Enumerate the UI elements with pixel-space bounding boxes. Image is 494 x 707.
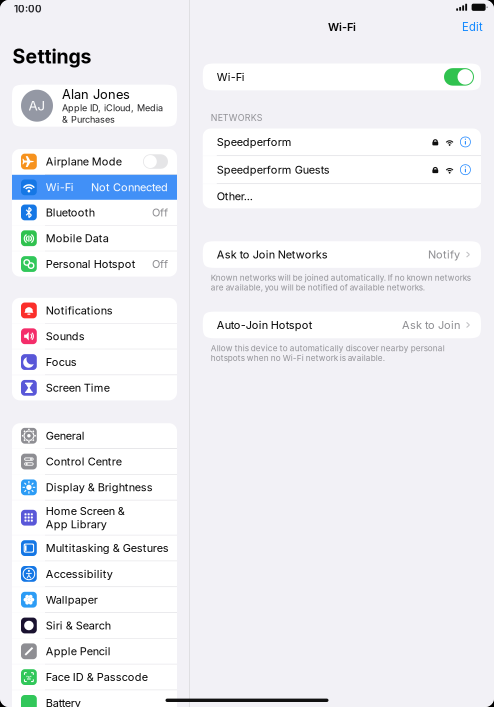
button[interactable]: Control Centre bbox=[12, 449, 177, 474]
button[interactable]: Personal Hotspot bbox=[12, 251, 177, 277]
button[interactable]: Home Screen & bbox=[12, 501, 177, 535]
staticText: Accessibility bbox=[46, 567, 113, 580]
staticText: Bluetooth bbox=[46, 206, 95, 219]
button[interactable]: Siri & Search bbox=[12, 613, 177, 638]
staticText: Mobile Data bbox=[46, 232, 109, 245]
staticText: Alan Jones bbox=[62, 86, 130, 102]
button[interactable]: Mobile Data bbox=[12, 226, 177, 251]
button[interactable]: General bbox=[12, 423, 177, 448]
staticText: Wi-Fi bbox=[217, 70, 245, 83]
button[interactable]: Display & Brightness bbox=[12, 475, 177, 500]
staticText: Known networks will be joined automatica… bbox=[211, 273, 471, 292]
button[interactable]: Wallpaper bbox=[12, 587, 177, 612]
button[interactable]: Airplane Mode bbox=[12, 149, 177, 174]
staticText: Ask to Join Networks bbox=[217, 248, 328, 261]
staticText: Settings bbox=[12, 45, 91, 68]
staticText: Other... bbox=[217, 190, 253, 203]
button[interactable]: AJ bbox=[12, 85, 177, 127]
staticText: Not Connected bbox=[91, 181, 168, 194]
staticText: Home Screen & bbox=[46, 504, 125, 518]
staticText: Display & Brightness bbox=[46, 481, 153, 494]
staticText: Edit bbox=[462, 20, 483, 34]
staticText: Off bbox=[152, 206, 168, 219]
button[interactable]: Battery bbox=[12, 690, 177, 707]
button[interactable]: Notifications bbox=[12, 298, 177, 323]
button[interactable]: Apple Pencil bbox=[12, 639, 177, 664]
button[interactable]: Speedperform Guests bbox=[203, 156, 481, 183]
staticText: Notifications bbox=[46, 304, 113, 317]
staticText: Multitasking & Gestures bbox=[46, 541, 169, 555]
staticText: Speedperform bbox=[217, 135, 292, 148]
staticText: Allow this device to automatically disco… bbox=[211, 343, 445, 363]
button[interactable]: Ask to Join Networks bbox=[203, 241, 481, 268]
staticText: Focus bbox=[46, 355, 77, 369]
staticText: Apple Pencil bbox=[46, 645, 111, 658]
staticText: Speedperform Guests bbox=[217, 163, 330, 176]
staticText: Auto-Join Hotspot bbox=[217, 318, 313, 331]
staticText: General bbox=[46, 429, 85, 442]
button[interactable]: Sounds bbox=[12, 324, 177, 349]
staticText: Face ID & Passcode bbox=[46, 670, 148, 684]
staticText: AJ bbox=[28, 98, 45, 114]
button[interactable]: Focus bbox=[12, 349, 177, 375]
button[interactable]: Other... bbox=[203, 184, 481, 208]
staticText: Airplane Mode bbox=[46, 155, 122, 168]
button[interactable]: Screen Time bbox=[12, 375, 177, 400]
button[interactable]: Speedperform bbox=[203, 128, 481, 155]
button[interactable]: Wi-Fi bbox=[12, 175, 177, 200]
staticText: Screen Time bbox=[46, 381, 110, 394]
staticText: Siri & Search bbox=[46, 619, 111, 632]
staticText: 10:00 bbox=[14, 3, 42, 15]
staticText: App Library bbox=[46, 518, 107, 531]
staticText: Ask to Join bbox=[402, 318, 460, 331]
button[interactable]: Edit bbox=[462, 20, 483, 34]
staticText: Control Centre bbox=[46, 455, 122, 468]
staticText: NETWORKS bbox=[211, 112, 263, 123]
staticText: Sounds bbox=[46, 330, 85, 343]
staticText: Wi-Fi bbox=[46, 181, 74, 194]
staticText: Wallpaper bbox=[46, 593, 98, 606]
button[interactable]: Face ID & Passcode bbox=[12, 665, 177, 690]
staticText: Wi-Fi bbox=[328, 20, 356, 34]
button[interactable]: Multitasking & Gestures bbox=[12, 536, 177, 561]
button[interactable]: Auto-Join Hotspot bbox=[203, 312, 481, 338]
staticText: Off bbox=[152, 257, 168, 271]
staticText: & Purchases bbox=[62, 114, 115, 125]
button[interactable]: Accessibility bbox=[12, 561, 177, 586]
button[interactable]: Bluetooth bbox=[12, 200, 177, 225]
staticText: Notify bbox=[428, 248, 460, 261]
staticText: Battery bbox=[46, 696, 81, 707]
staticText: Apple ID, iCloud, Media bbox=[62, 102, 163, 113]
staticText: Personal Hotspot bbox=[46, 257, 136, 271]
